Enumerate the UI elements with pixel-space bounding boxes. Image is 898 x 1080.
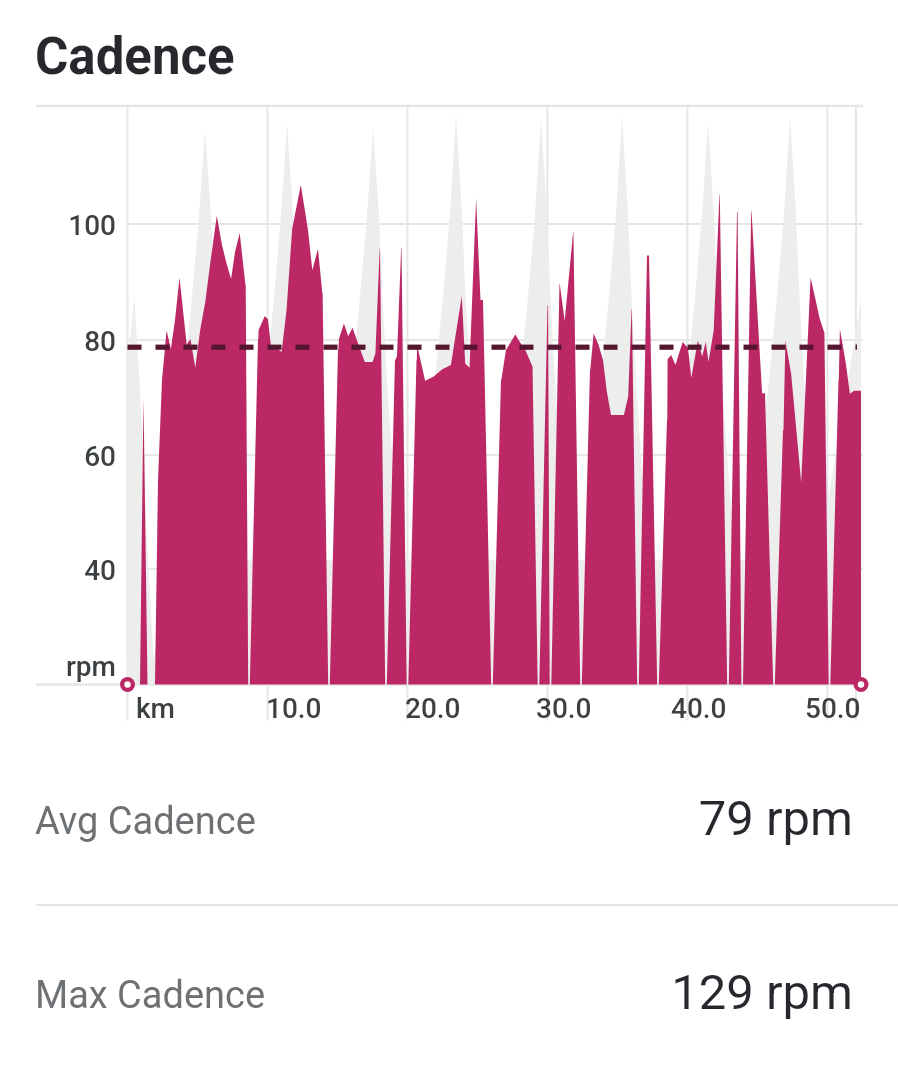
staticText: Avg Cadence xyxy=(35,799,256,844)
staticText: 60 xyxy=(0,440,116,473)
button[interactable]: Avg Cadence xyxy=(0,778,898,858)
staticText: 10.0 xyxy=(266,692,322,725)
staticText: 40.0 xyxy=(671,692,727,725)
staticText: Cadence xyxy=(35,27,235,87)
staticText: 80 xyxy=(0,325,116,358)
staticText: 30.0 xyxy=(536,692,592,725)
staticText: km xyxy=(136,692,175,725)
staticText: 50.0 xyxy=(805,692,861,725)
staticText: 100 xyxy=(0,209,116,242)
staticText: 40 xyxy=(0,554,116,587)
staticText: 20.0 xyxy=(405,692,461,725)
staticText: rpm xyxy=(0,650,116,683)
button[interactable]: Max Cadence xyxy=(0,952,898,1032)
staticText: 79 rpm xyxy=(400,790,853,847)
staticText: Max Cadence xyxy=(35,973,266,1018)
staticText: 129 rpm xyxy=(400,964,853,1021)
